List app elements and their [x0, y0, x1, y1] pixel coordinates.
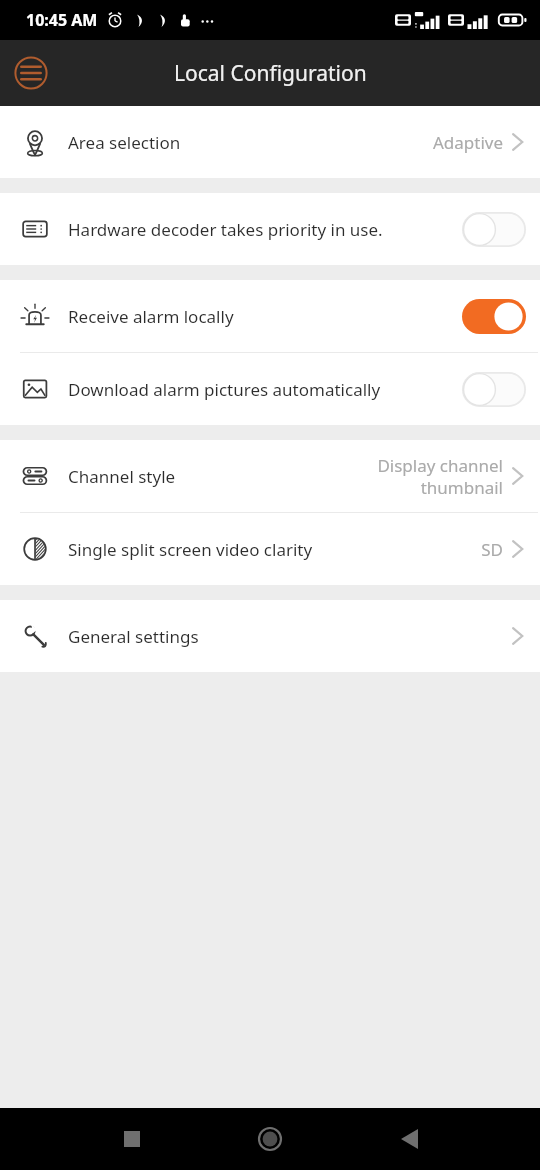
button[interactable]: Switch off: [462, 372, 526, 407]
button[interactable]: Hardware decoder takes priority in use.: [0, 193, 540, 265]
staticText: Area selection: [68, 131, 181, 154]
staticText: Channel style: [68, 465, 176, 488]
button[interactable]: General settings: [0, 600, 540, 672]
staticText: Single split screen video clarity: [68, 538, 313, 561]
button[interactable]: Switch off: [462, 212, 526, 247]
button[interactable]: Single split screen video clarity: [0, 513, 540, 585]
staticText: General settings: [68, 625, 199, 648]
staticText: Receive alarm locally: [68, 305, 234, 328]
staticText: Local Configuration: [174, 59, 367, 88]
button[interactable]: Area selection: [0, 106, 540, 178]
button[interactable]: Receive alarm locally: [0, 280, 540, 352]
staticText: Hardware decoder takes priority in use.: [68, 218, 383, 241]
staticText: Display channel thumbnail: [343, 454, 503, 499]
button[interactable]: Home: [243, 1112, 297, 1166]
button[interactable]: Download alarm pictures automatically: [0, 353, 540, 425]
button[interactable]: Back: [382, 1112, 436, 1166]
button[interactable]: Channel style: [0, 440, 540, 512]
staticText: Adaptive: [403, 131, 503, 154]
staticText: 10:45 AM: [26, 9, 98, 31]
button[interactable]: Switch on: [462, 299, 526, 334]
button[interactable]: Recent apps: [105, 1112, 159, 1166]
button[interactable]: Open navigation menu: [8, 50, 54, 96]
staticText: SD: [403, 538, 503, 561]
staticText: Download alarm pictures automatically: [68, 378, 381, 401]
